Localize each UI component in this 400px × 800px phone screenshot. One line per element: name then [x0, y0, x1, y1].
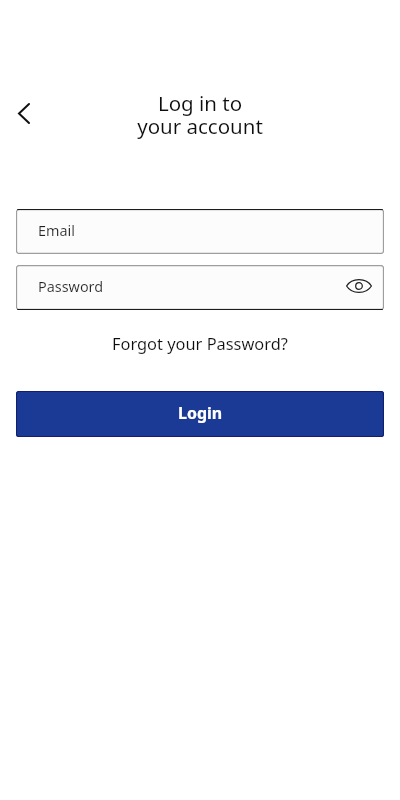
button[interactable]: Password [16, 265, 384, 310]
staticText: Login [178, 402, 223, 424]
button[interactable]: Email [16, 209, 384, 254]
staticText: Password [38, 277, 104, 297]
button[interactable]: Forgot your Password? [106, 329, 294, 357]
button[interactable]: Back [9, 98, 39, 128]
button[interactable]: Show password [345, 272, 373, 300]
staticText: Email [38, 221, 75, 241]
button[interactable]: Login [16, 391, 384, 437]
staticText: Log in to your account [0, 89, 400, 140]
